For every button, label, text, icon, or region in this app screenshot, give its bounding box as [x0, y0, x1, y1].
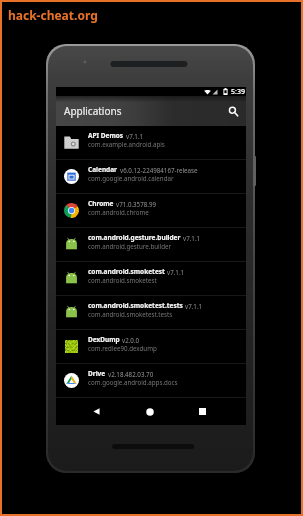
staticText: com.android.gesture.builder — [88, 242, 172, 250]
staticText: v71.0.3578.99 — [116, 200, 156, 208]
staticText: com.android.smoketest — [88, 267, 165, 276]
button[interactable]: Chrome — [56, 194, 246, 227]
staticText: com.android.smoketest — [88, 276, 157, 284]
staticText: v2.18.482.03.70 — [108, 370, 154, 378]
button[interactable]: com.android.smoketest.tests — [56, 296, 246, 329]
staticText: hack-cheat.org — [8, 7, 98, 23]
staticText: Drive — [88, 369, 106, 378]
button[interactable]: Search — [220, 96, 246, 126]
button[interactable]: Home — [139, 398, 161, 425]
button[interactable]: Applications — [56, 96, 246, 126]
staticText: com.google.android.calendar — [88, 174, 174, 182]
staticText: com.android.smoketest.tests — [88, 301, 183, 310]
staticText: v7.1.1 — [183, 234, 201, 242]
staticText: v7.1.1 — [185, 302, 203, 310]
button[interactable]: API Demos — [56, 126, 246, 159]
staticText: Chrome — [88, 199, 114, 208]
staticText: com.android.smoketest.tests — [88, 310, 173, 318]
staticText: com.redlee90.dexdump — [88, 344, 157, 352]
button[interactable]: Drive — [56, 364, 246, 397]
button[interactable]: com.android.smoketest — [56, 262, 246, 295]
staticText: Applications — [64, 104, 122, 118]
button[interactable]: Calendar — [56, 160, 246, 193]
button[interactable]: com.android.gesture.builder — [56, 228, 246, 261]
staticText: v2.0.0 — [122, 336, 140, 344]
staticText: com.android.chrome — [88, 208, 149, 216]
staticText: com.google.android.apps.docs — [88, 378, 178, 386]
button[interactable]: Back — [85, 398, 107, 425]
staticText: com.example.android.apis — [88, 140, 165, 148]
staticText: v6.0.12-224984167-release — [120, 166, 198, 174]
staticText: 5:39 — [231, 87, 245, 96]
staticText: DexDump — [88, 335, 120, 344]
button[interactable]: Recents — [191, 398, 213, 425]
staticText: v7.1.1 — [167, 268, 185, 276]
staticText: v7.1.1 — [126, 132, 144, 140]
staticText: API Demos — [88, 131, 124, 140]
staticText: Calendar — [88, 165, 118, 174]
button[interactable]: DexDump — [56, 330, 246, 363]
staticText: com.android.gesture.builder — [88, 233, 181, 242]
